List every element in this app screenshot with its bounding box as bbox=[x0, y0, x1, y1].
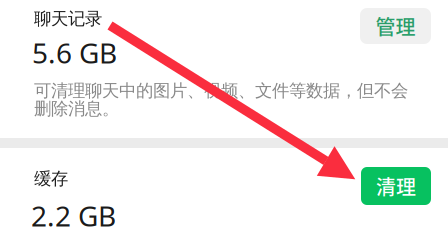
staticText: 2.2 GB bbox=[31, 197, 116, 234]
staticText: 缓存 bbox=[34, 168, 68, 189]
button[interactable]: 清理 bbox=[361, 167, 431, 205]
staticText: 删除消息。 bbox=[34, 98, 119, 119]
staticText: 聊天记录 bbox=[34, 8, 102, 29]
staticText: 可清理聊天中的图片、视频、文件等数据，但不会 bbox=[34, 80, 408, 101]
staticText: 5.6 GB bbox=[32, 34, 117, 71]
staticText: 管理 bbox=[375, 11, 415, 40]
staticText: 清理 bbox=[376, 171, 416, 200]
button[interactable]: 管理 bbox=[360, 8, 431, 44]
